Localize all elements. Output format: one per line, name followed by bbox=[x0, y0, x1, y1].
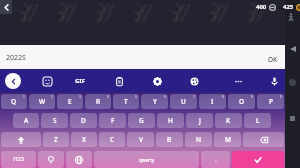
button[interactable]: More options bbox=[230, 73, 246, 89]
button[interactable]: J bbox=[186, 113, 213, 128]
button[interactable]: O bbox=[228, 94, 255, 109]
button[interactable]: . bbox=[201, 151, 230, 168]
button[interactable]: qwerty bbox=[94, 151, 199, 168]
staticText: ?123 bbox=[13, 156, 24, 163]
button[interactable]: Recent apps bbox=[286, 112, 299, 125]
staticText: 6 bbox=[164, 95, 166, 99]
staticText: L bbox=[256, 116, 260, 125]
button[interactable]: R bbox=[85, 94, 111, 109]
button[interactable]: K bbox=[215, 113, 242, 128]
staticText: S bbox=[53, 116, 57, 125]
staticText: A bbox=[24, 116, 29, 125]
button[interactable]: D bbox=[70, 113, 97, 128]
staticText: P bbox=[269, 97, 273, 106]
button[interactable]: GIF bbox=[72, 73, 88, 89]
staticText: C bbox=[110, 135, 115, 144]
staticText: 0 bbox=[280, 95, 282, 99]
staticText: H bbox=[168, 116, 173, 125]
staticText: E bbox=[68, 97, 72, 106]
button[interactable]: F bbox=[99, 113, 126, 128]
staticText: OK bbox=[268, 55, 278, 64]
staticText: 3 bbox=[79, 95, 81, 99]
button[interactable]: ?123 bbox=[1, 151, 36, 168]
button[interactable]: X bbox=[71, 132, 97, 147]
staticText: Y bbox=[153, 97, 157, 106]
staticText: V bbox=[139, 135, 143, 144]
staticText: 8 bbox=[222, 95, 224, 99]
button[interactable]: B bbox=[156, 132, 183, 147]
button[interactable]: E bbox=[57, 94, 83, 109]
button[interactable]: Enter bbox=[232, 151, 284, 168]
staticText: N bbox=[196, 135, 202, 144]
button[interactable]: L bbox=[244, 113, 271, 128]
staticText: 425 bbox=[283, 3, 294, 11]
staticText: R bbox=[96, 97, 101, 106]
button[interactable]: Q bbox=[1, 94, 27, 109]
staticText: U bbox=[181, 97, 186, 106]
button[interactable]: T bbox=[113, 94, 139, 109]
staticText: K bbox=[226, 116, 231, 125]
button[interactable]: Close keyboard bbox=[5, 73, 21, 89]
button[interactable]: Emoji bbox=[39, 73, 55, 89]
staticText: I bbox=[211, 97, 214, 106]
button[interactable]: Stickers bbox=[186, 73, 202, 89]
button[interactable]: Back bbox=[286, 42, 299, 55]
button[interactable]: C bbox=[99, 132, 125, 147]
staticText: J bbox=[199, 116, 201, 125]
button[interactable]: U bbox=[170, 94, 197, 109]
staticText: G bbox=[139, 116, 144, 125]
staticText: . bbox=[215, 155, 217, 164]
staticText: 400 bbox=[256, 3, 267, 11]
button[interactable]: Emoji bbox=[38, 151, 64, 168]
staticText: 9 bbox=[251, 95, 253, 99]
button[interactable]: Z bbox=[43, 132, 69, 147]
button[interactable]: N bbox=[185, 132, 212, 147]
staticText: B bbox=[167, 135, 172, 144]
button[interactable]: Y bbox=[141, 94, 168, 109]
button[interactable]: P bbox=[257, 94, 284, 109]
staticText: T bbox=[124, 97, 128, 106]
staticText: 2022S bbox=[6, 53, 26, 63]
staticText: D bbox=[81, 116, 86, 125]
button[interactable]: Backspace bbox=[243, 132, 284, 147]
staticText: F bbox=[111, 116, 115, 125]
staticText: 5 bbox=[135, 95, 137, 99]
staticText: O bbox=[239, 97, 245, 106]
button[interactable]: Clipboard bbox=[111, 73, 127, 89]
button[interactable]: I bbox=[199, 94, 226, 109]
button[interactable]: V bbox=[127, 132, 154, 147]
button[interactable]: Home bbox=[286, 76, 299, 89]
button[interactable]: G bbox=[128, 113, 155, 128]
button[interactable]: M bbox=[214, 132, 241, 147]
button[interactable]: Voice input bbox=[266, 73, 282, 89]
button[interactable]: Back bbox=[0, 0, 12, 14]
staticText: 2 bbox=[51, 95, 53, 99]
button[interactable]: W bbox=[29, 94, 55, 109]
staticText: 4 bbox=[107, 95, 109, 99]
staticText: W bbox=[39, 97, 46, 106]
staticText: M bbox=[225, 135, 231, 144]
button[interactable]: S bbox=[41, 113, 68, 128]
staticText: GIF bbox=[75, 77, 85, 85]
staticText: 1 bbox=[23, 95, 25, 99]
staticText: X bbox=[82, 135, 86, 144]
staticText: qwerty bbox=[139, 157, 155, 163]
button[interactable]: OK bbox=[268, 55, 278, 64]
button[interactable]: H bbox=[157, 113, 184, 128]
staticText: Z bbox=[54, 135, 58, 144]
staticText: Q bbox=[11, 97, 17, 106]
staticText: 7 bbox=[193, 95, 195, 99]
button[interactable]: Change language bbox=[66, 151, 92, 168]
button[interactable]: A bbox=[13, 113, 39, 128]
button[interactable]: Settings bbox=[149, 73, 165, 89]
button[interactable]: Shift bbox=[1, 132, 41, 147]
